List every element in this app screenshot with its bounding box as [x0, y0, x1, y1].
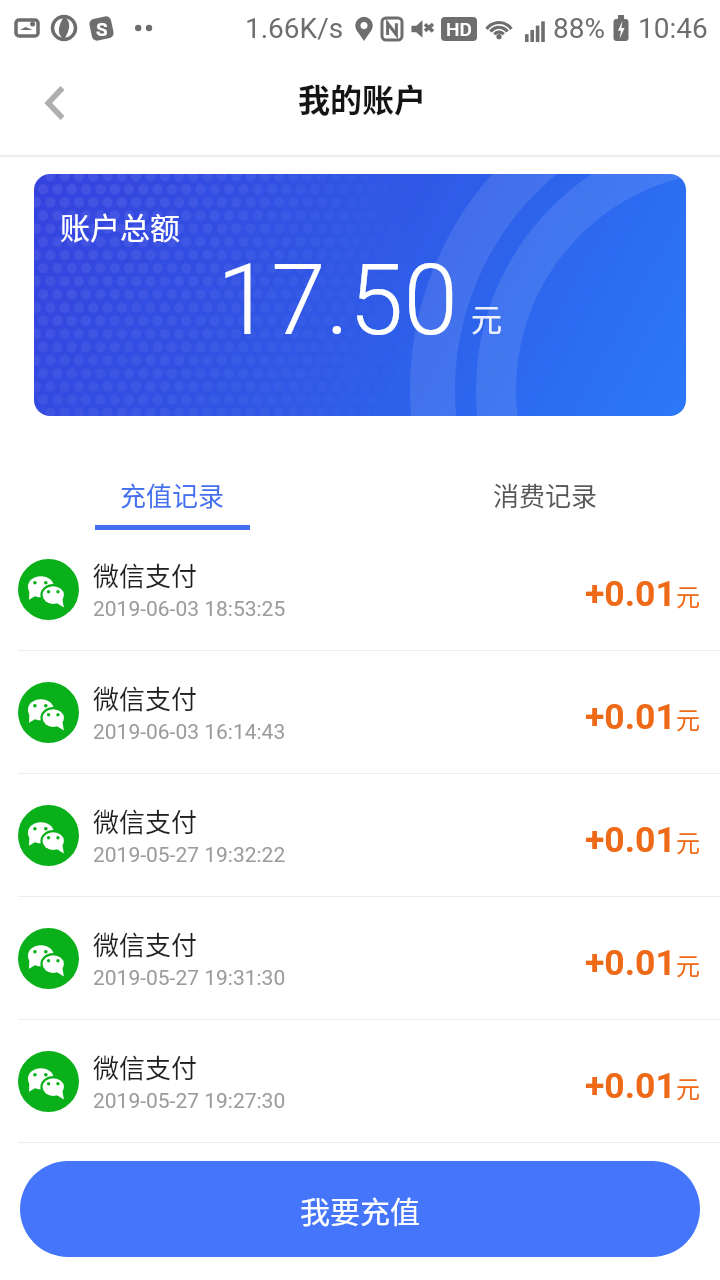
button[interactable]: 微信支付 — [0, 651, 720, 773]
staticText: 元 — [471, 295, 502, 340]
staticText: 88% — [553, 12, 605, 45]
staticText: +0.01 — [585, 696, 676, 738]
staticText: 元 — [676, 947, 700, 982]
staticText: +0.01 — [585, 1065, 676, 1107]
staticText: 我的账户 — [298, 75, 427, 121]
button[interactable]: 我要充值 — [20, 1161, 700, 1257]
staticText: 2019-05-27 19:27:30 — [93, 1089, 286, 1114]
button[interactable]: 微信支付 — [0, 528, 720, 650]
staticText: 元 — [676, 578, 700, 613]
staticText: 2019-06-03 16:14:43 — [93, 720, 286, 745]
staticText: S — [96, 18, 108, 40]
staticText: 2019-05-27 19:32:22 — [93, 843, 286, 868]
staticText: +0.01 — [585, 819, 676, 861]
staticText: +0.01 — [585, 942, 676, 984]
button[interactable]: 充值记录 — [68, 476, 276, 528]
staticText: 1.66K/s — [245, 12, 344, 45]
staticText: 元 — [676, 824, 700, 859]
staticText: 充值记录 — [120, 476, 225, 514]
staticText: HD — [446, 18, 472, 40]
staticText: 2019-05-27 19:31:30 — [93, 966, 286, 991]
button[interactable]: 微信支付 — [0, 897, 720, 1019]
staticText: 我要充值 — [300, 1188, 420, 1231]
button[interactable]: 微信支付 — [0, 774, 720, 896]
staticText: 10:46 — [638, 12, 708, 45]
button[interactable]: 微信支付 — [0, 1020, 720, 1142]
staticText: 微信支付 — [93, 925, 198, 963]
staticText: 微信支付 — [93, 802, 198, 840]
button[interactable]: 消费记录 — [441, 476, 649, 528]
button[interactable]: 账户总额 — [34, 174, 686, 416]
staticText: 账户总额 — [60, 204, 180, 247]
staticText: 微信支付 — [93, 556, 198, 594]
staticText: 微信支付 — [93, 1048, 198, 1086]
staticText: 元 — [676, 701, 700, 736]
staticText: 元 — [676, 1070, 700, 1105]
staticText: 消费记录 — [493, 476, 598, 514]
staticText: 17.50 — [217, 243, 458, 358]
staticText: +0.01 — [585, 573, 676, 615]
staticText: 2019-06-03 18:53:25 — [93, 597, 286, 622]
button[interactable]: Back — [0, 62, 88, 150]
staticText: 微信支付 — [93, 679, 198, 717]
